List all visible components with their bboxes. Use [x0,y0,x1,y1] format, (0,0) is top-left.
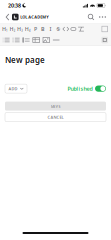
button[interactable]: Bulleted list [1,34,11,45]
button[interactable]: Search [85,11,97,23]
button[interactable]: Strikethrough [54,23,62,34]
button[interactable]: Heading 4 [24,23,32,34]
button[interactable]: Published [68,85,106,92]
button[interactable]: Code [62,23,70,34]
button[interactable]: Insert link [70,23,77,34]
staticText: S [57,25,60,33]
staticText: H [2,25,6,33]
button[interactable]: CANCEL [5,113,106,122]
button[interactable]: Heading 2 [9,23,16,34]
button[interactable]: Clear formatting [77,23,85,34]
staticText: CANCEL [47,114,63,120]
button[interactable]: Horizontal rule [51,34,61,45]
staticText: H [9,25,13,33]
button[interactable]: Bold [39,23,47,34]
staticText: ADD [8,86,17,91]
staticText: New page [5,54,45,65]
staticText: SAVE [50,103,60,109]
staticText: 4 [29,29,31,32]
button[interactable]: Blockquote [21,34,31,45]
staticText: H [25,25,29,33]
button[interactable]: More options [97,11,108,23]
staticText: 2 [14,29,16,32]
button[interactable]: ADD [5,84,27,93]
staticText: B [41,25,45,33]
button[interactable]: Back [3,11,12,23]
button[interactable]: Paragraph [32,23,39,34]
button[interactable]: Numbered list [11,34,21,45]
button[interactable]: Heading 1 [1,23,9,34]
button[interactable]: Text options [101,23,108,34]
button[interactable]: Insert media [101,34,108,45]
staticText: I [50,25,52,33]
staticText: Published [68,85,93,92]
button[interactable]: Insert image [41,34,51,45]
staticText: LOL ACADEMY [20,14,49,20]
staticText: 3 [21,29,23,32]
button[interactable]: Heading 3 [16,23,24,34]
button[interactable]: SAVE [5,102,106,111]
staticText: 20:38 [8,2,21,9]
staticText: H [17,25,21,33]
button[interactable]: Insert table [31,34,41,45]
button[interactable]: Italic [47,23,54,34]
staticText: 1 [6,29,8,32]
staticText: P [34,25,37,33]
